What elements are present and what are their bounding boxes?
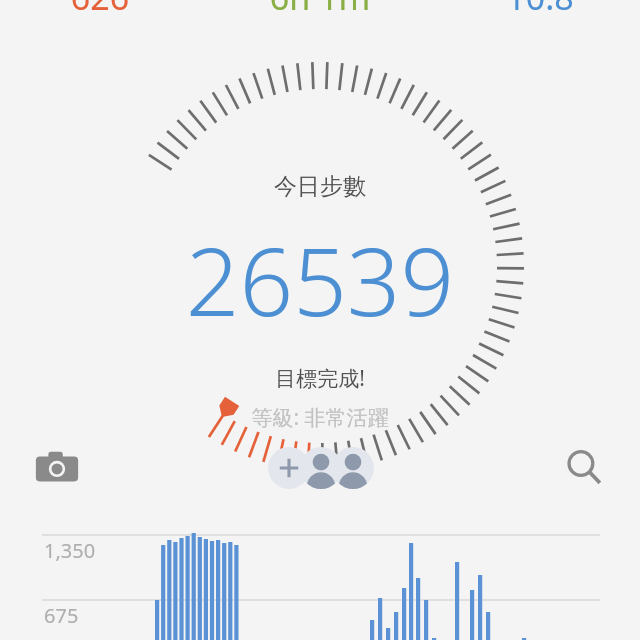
staticText: 目標完成! — [0, 364, 640, 400]
button[interactable]: Friend — [332, 447, 374, 489]
staticText: 626 — [30, 0, 170, 18]
staticText: 26539 — [0, 216, 640, 376]
staticText: 1,350 — [44, 537, 96, 564]
staticText: 6h 1m — [250, 0, 390, 18]
button[interactable]: Camera — [33, 444, 81, 492]
button[interactable]: Friend — [300, 447, 342, 489]
staticText: 10.8 — [470, 0, 610, 18]
staticText: 等級: 非常活躍 — [0, 403, 640, 439]
staticText: 今日步數 — [0, 172, 640, 211]
staticText: 675 — [44, 602, 79, 629]
button[interactable]: Search — [562, 445, 606, 489]
button[interactable]: Add friend — [268, 447, 310, 489]
